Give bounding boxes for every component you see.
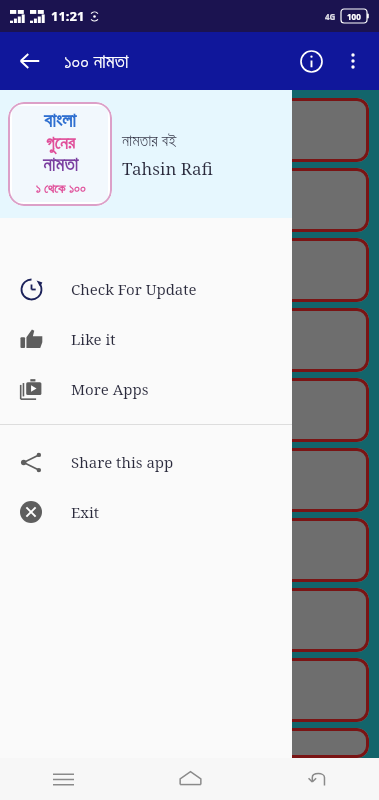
button[interactable]: [10, 238, 369, 302]
button[interactable]: [10, 588, 369, 652]
button[interactable]: More options: [333, 41, 373, 81]
button[interactable]: Exit: [0, 487, 292, 537]
button[interactable]: More Apps: [0, 364, 292, 414]
button[interactable]: [10, 98, 369, 162]
button[interactable]: Share this app: [0, 437, 292, 487]
staticText: Exit: [71, 502, 100, 522]
staticText: Check For Update: [71, 279, 197, 299]
staticText: ১ থেকে ১০০: [35, 179, 86, 197]
staticText: 11:21: [51, 7, 85, 25]
button[interactable]: Back: [8, 39, 52, 83]
staticText: গুনের: [46, 135, 75, 153]
button[interactable]: [10, 658, 369, 722]
button[interactable]: Info: [289, 39, 333, 83]
staticText: নামতার বই: [122, 129, 177, 151]
button[interactable]: Recents: [0, 758, 127, 800]
staticText: 100: [347, 11, 361, 22]
staticText: ১০০ নামতা: [64, 48, 129, 74]
staticText: Share this app: [71, 452, 174, 472]
button[interactable]: [10, 378, 369, 442]
button[interactable]: [10, 308, 369, 372]
staticText: বাংলা: [44, 111, 76, 131]
button[interactable]: Home: [127, 758, 253, 800]
staticText: নামতা: [43, 156, 78, 175]
button[interactable]: Back: [253, 758, 379, 800]
staticText: 4G: [325, 11, 336, 22]
staticText: Tahsin Rafi: [122, 157, 213, 180]
staticText: More Apps: [71, 379, 149, 399]
staticText: Like it: [71, 329, 116, 349]
button[interactable]: [10, 518, 369, 582]
button[interactable]: [10, 448, 369, 512]
button[interactable]: [10, 168, 369, 232]
button[interactable]: Check For Update: [0, 264, 292, 314]
button[interactable]: [10, 728, 369, 758]
button[interactable]: বাংলা: [0, 90, 292, 218]
button[interactable]: Like it: [0, 314, 292, 364]
